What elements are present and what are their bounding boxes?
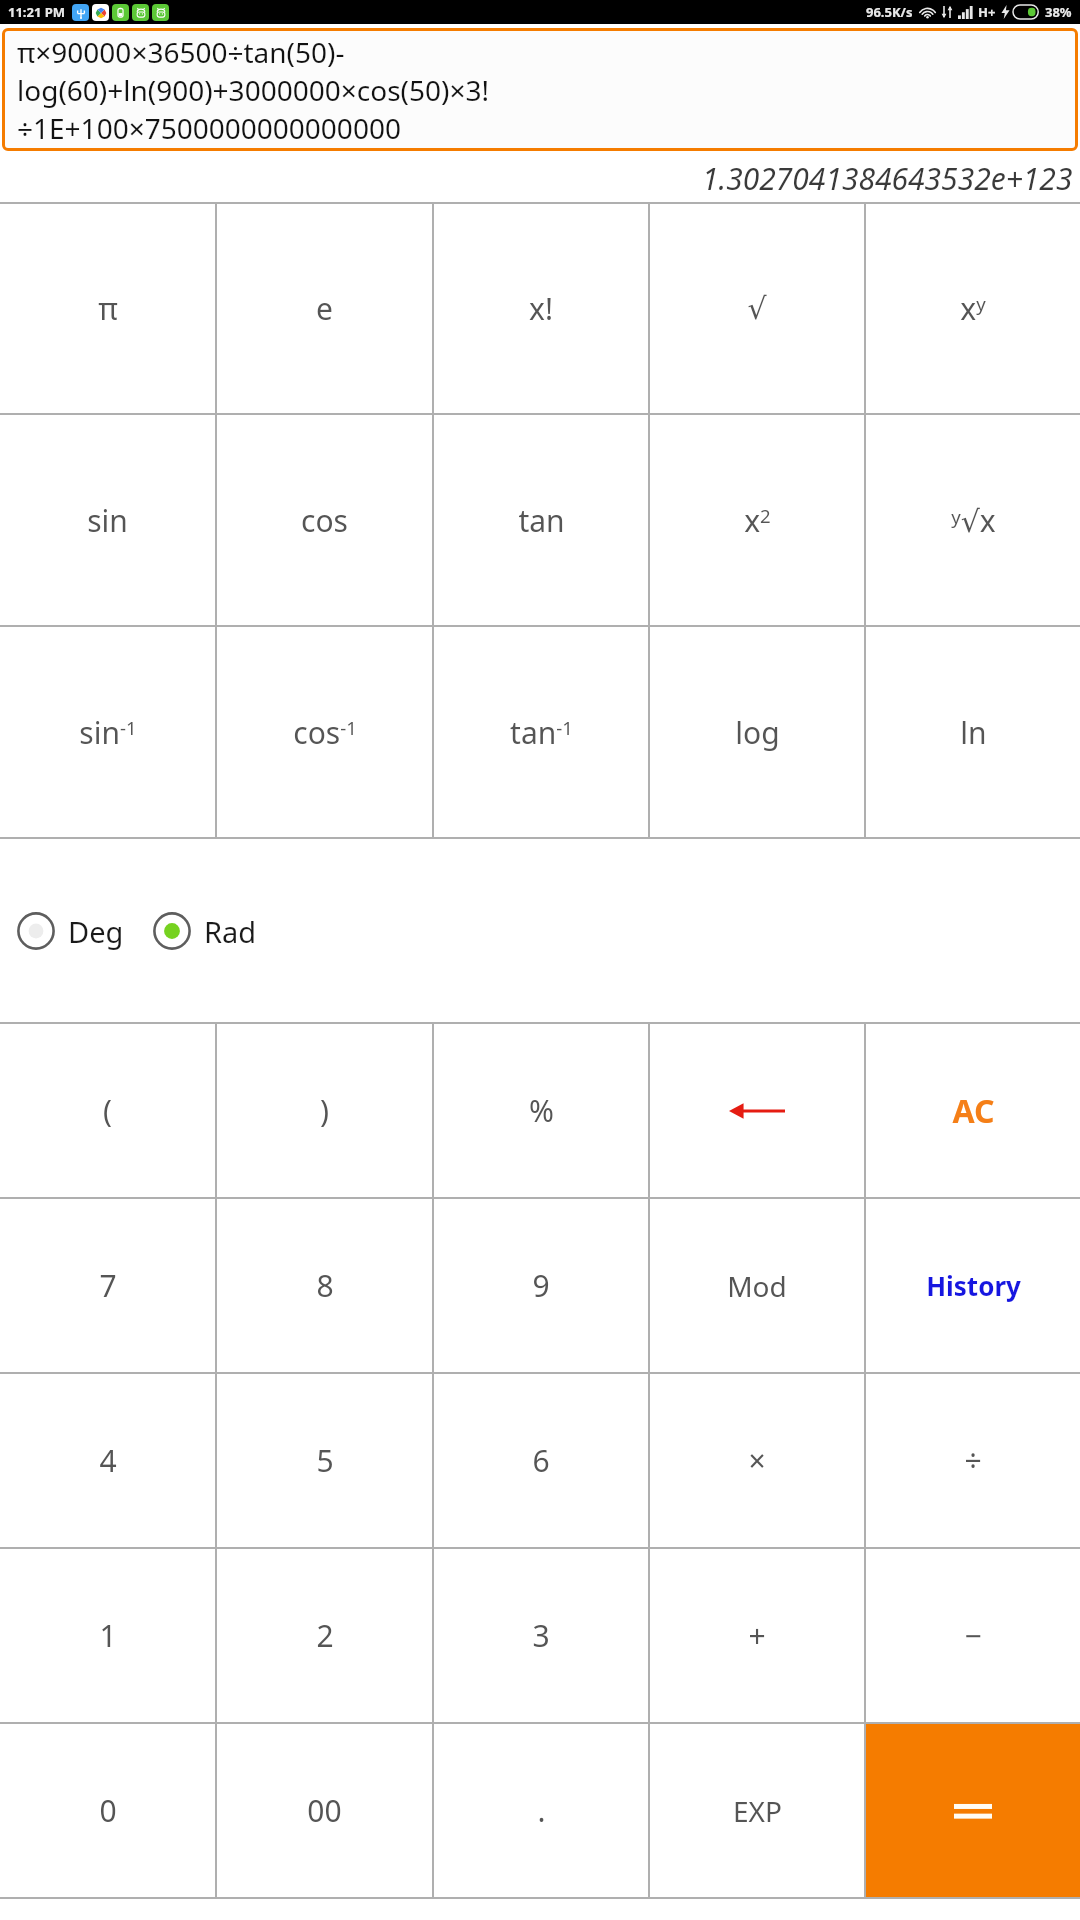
staticText: ln [960, 712, 987, 753]
button[interactable]: x! [434, 204, 648, 413]
staticText: Deg [68, 912, 124, 951]
button[interactable]: sin [0, 415, 215, 625]
button[interactable]: 2 [217, 1549, 432, 1722]
button[interactable]: 7 [0, 1199, 215, 1372]
staticText: 1 [99, 1615, 117, 1656]
staticText: tan [518, 500, 565, 541]
button[interactable]: e [217, 204, 432, 413]
staticText: √ [747, 291, 767, 326]
button[interactable]: EXP [650, 1724, 864, 1897]
button[interactable]: ln [866, 627, 1080, 837]
staticText: cos-1 [293, 712, 357, 753]
staticText: 7 [99, 1265, 117, 1306]
staticText: 96.5K/s [866, 3, 913, 21]
button[interactable]: Deg [14, 905, 126, 957]
staticText: xy [960, 288, 986, 329]
button[interactable]: AC [866, 1024, 1080, 1197]
button[interactable]: 6 [434, 1374, 648, 1547]
button[interactable]: x2 [650, 415, 864, 625]
staticText: e [316, 288, 333, 329]
staticText: 9 [532, 1265, 550, 1306]
staticText: 3 [532, 1615, 550, 1656]
staticText: AC [952, 1089, 995, 1133]
button[interactable]: 4 [0, 1374, 215, 1547]
button[interactable]: 0 [0, 1724, 215, 1897]
button[interactable]: − [866, 1549, 1080, 1722]
button[interactable]: y√x [866, 415, 1080, 625]
staticText: ( [103, 1090, 112, 1131]
staticText: cos [301, 500, 348, 541]
button[interactable]: 3 [434, 1549, 648, 1722]
staticText: Mod [727, 1267, 787, 1305]
staticText: . [537, 1790, 546, 1831]
staticText: sin [87, 500, 128, 541]
button[interactable]: 5 [217, 1374, 432, 1547]
button[interactable]: Backspace [650, 1024, 864, 1197]
staticText: 5 [316, 1440, 334, 1481]
button[interactable]: 8 [217, 1199, 432, 1372]
staticText: log [735, 712, 780, 753]
button[interactable]: log [650, 627, 864, 837]
staticText: ÷ [964, 1440, 982, 1481]
staticText: y√x [951, 500, 996, 541]
staticText: 0 [99, 1790, 117, 1831]
button[interactable]: tan-1 [434, 627, 648, 837]
staticText: 8 [316, 1265, 334, 1306]
staticText: 38% [1045, 3, 1072, 21]
button[interactable]: √ [650, 204, 864, 413]
staticText: % [529, 1090, 554, 1131]
button[interactable]: Mod [650, 1199, 864, 1372]
staticText: 6 [532, 1440, 550, 1481]
button[interactable]: ) [217, 1024, 432, 1197]
button[interactable]: + [650, 1549, 864, 1722]
staticText: x2 [744, 500, 771, 541]
staticText: sin-1 [79, 712, 137, 753]
staticText: − [964, 1615, 982, 1656]
button[interactable]: π×90000×36500÷tan(50)- log(60)+ln(900)+3… [5, 31, 1075, 148]
staticText: 11:21 PM [8, 3, 66, 21]
button[interactable]: tan [434, 415, 648, 625]
staticText: + [748, 1615, 766, 1656]
button[interactable]: × [650, 1374, 864, 1547]
staticText: tan-1 [510, 712, 573, 753]
staticText: x! [529, 288, 553, 329]
staticText: 1.3027041384643532e+123 [702, 158, 1073, 199]
staticText: π×90000×36500÷tan(50)- log(60)+ln(900)+3… [17, 33, 489, 147]
button[interactable]: % [434, 1024, 648, 1197]
button[interactable]: History [866, 1199, 1080, 1372]
button[interactable]: Rad [150, 905, 259, 957]
staticText: ) [320, 1090, 329, 1131]
staticText: π [98, 288, 118, 329]
staticText: H+ [978, 3, 996, 21]
staticText: 2 [316, 1615, 334, 1656]
button[interactable]: π [0, 204, 215, 413]
button[interactable]: cos-1 [217, 627, 432, 837]
button[interactable]: xy [866, 204, 1080, 413]
staticText: EXP [733, 1792, 782, 1830]
button[interactable]: sin-1 [0, 627, 215, 837]
button[interactable]: 1 [0, 1549, 215, 1722]
button[interactable]: cos [217, 415, 432, 625]
staticText: History [926, 1268, 1021, 1303]
staticText: × [748, 1440, 766, 1481]
button[interactable]: ( [0, 1024, 215, 1197]
staticText: Rad [204, 912, 257, 951]
button[interactable]: ÷ [866, 1374, 1080, 1547]
staticText: 00 [307, 1790, 342, 1831]
button[interactable]: 00 [217, 1724, 432, 1897]
staticText: 4 [99, 1440, 117, 1481]
button[interactable]: 9 [434, 1199, 648, 1372]
button[interactable]: Equals [866, 1724, 1080, 1897]
